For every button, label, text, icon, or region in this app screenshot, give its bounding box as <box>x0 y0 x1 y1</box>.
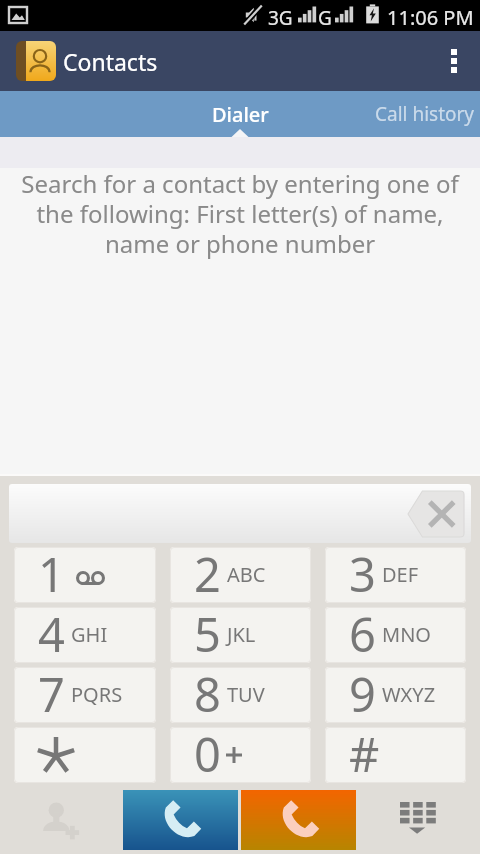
button[interactable] <box>14 727 156 783</box>
staticText: MNO <box>382 621 431 648</box>
button[interactable]: More options <box>428 31 480 91</box>
button[interactable]: Call with SIM 2 <box>241 790 356 850</box>
button[interactable]: 3 <box>325 547 466 603</box>
button[interactable]: 1 <box>14 547 156 603</box>
staticText: Dialer <box>212 101 269 128</box>
staticText: GHI <box>71 621 108 648</box>
button[interactable]: 8 <box>170 667 311 723</box>
staticText: PQRS <box>71 681 123 708</box>
staticText: 4 <box>38 607 65 658</box>
button[interactable]: Call with SIM 1 <box>123 790 238 850</box>
staticText: JKL <box>227 621 256 648</box>
staticText: G <box>318 5 332 31</box>
button[interactable]: 7 <box>14 667 156 723</box>
staticText: 0 <box>194 727 221 778</box>
button[interactable]: 5 <box>170 607 311 663</box>
staticText: 9 <box>349 667 376 718</box>
button[interactable]: 9 <box>325 667 466 723</box>
staticText: ABC <box>227 561 266 588</box>
staticText: TUV <box>227 681 265 708</box>
staticText: Search for a contact by entering one of … <box>5 167 475 260</box>
staticText: 6 <box>349 607 376 658</box>
staticText: Call history <box>375 101 475 127</box>
staticText: 11:06 PM <box>387 4 474 31</box>
button[interactable]: Backspace <box>9 484 471 543</box>
staticText: 1 <box>38 547 65 598</box>
staticText: 8 <box>194 667 221 718</box>
staticText: 5 <box>194 607 221 658</box>
staticText: 3G <box>268 5 293 31</box>
staticText: 3 <box>349 547 376 598</box>
staticText: DEF <box>382 561 419 588</box>
button[interactable]: Hide keypad <box>356 786 480 854</box>
button[interactable]: Dialer <box>165 91 315 137</box>
button[interactable]: 0 <box>170 727 311 783</box>
button[interactable]: 2 <box>170 547 311 603</box>
staticText: # <box>349 727 380 778</box>
button[interactable]: Backspace <box>407 491 464 537</box>
button[interactable]: # <box>325 727 466 783</box>
button[interactable]: Call history <box>355 91 480 137</box>
button[interactable]: 4 <box>14 607 156 663</box>
staticText: 7 <box>38 667 65 718</box>
staticText: WXYZ <box>382 681 436 708</box>
staticText: 2 <box>194 547 221 598</box>
staticText: Contacts <box>63 46 158 77</box>
button[interactable]: 6 <box>325 607 466 663</box>
